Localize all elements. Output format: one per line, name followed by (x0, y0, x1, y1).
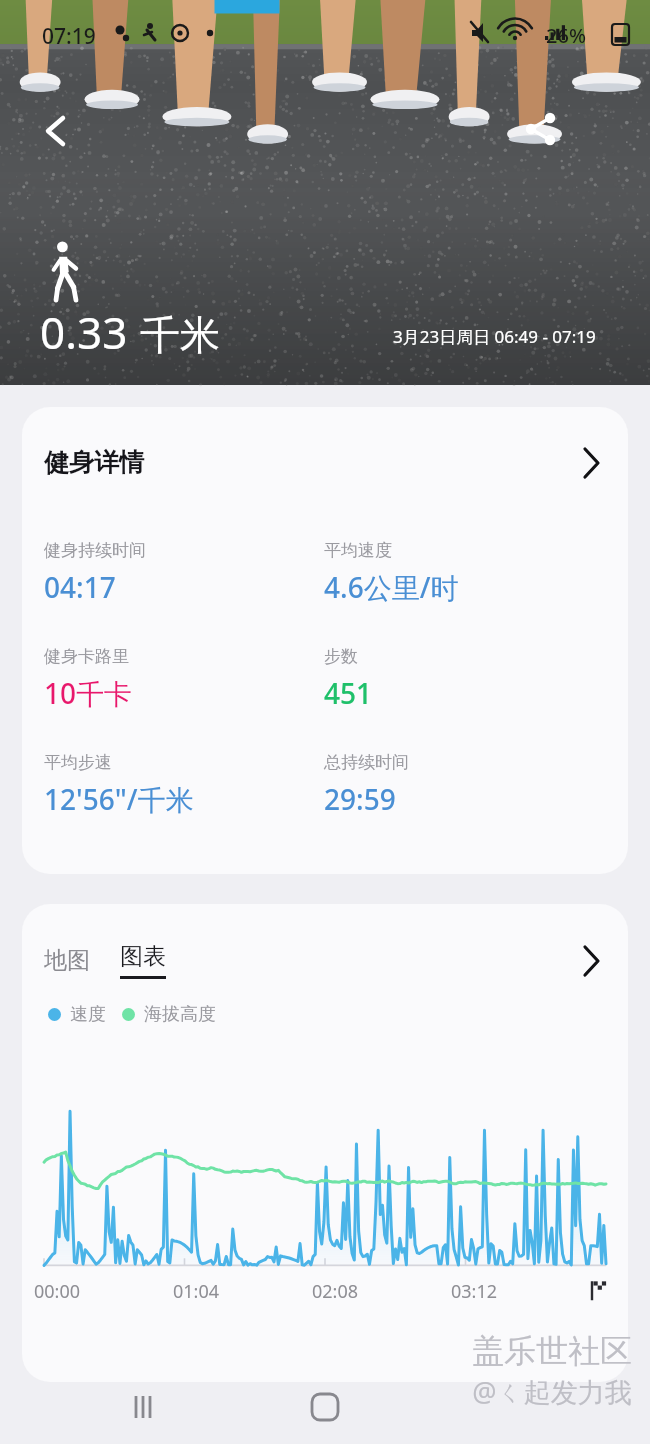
button[interactable]: 健身详情 (22, 407, 628, 874)
staticText: 04:17 (44, 568, 116, 606)
staticText: 29:59 (324, 780, 396, 818)
button[interactable]: Share (512, 100, 570, 158)
staticText: 健身详情 (44, 447, 144, 478)
staticText: 12'56"/千米 (44, 780, 194, 818)
staticText: 0.33 (40, 302, 128, 362)
button[interactable]: 地图 (44, 946, 94, 975)
button[interactable]: Home (287, 1370, 363, 1444)
staticText: 00:00 (34, 1279, 81, 1304)
staticText: 26% (546, 22, 586, 49)
staticText: 平均步速 (44, 752, 112, 773)
staticText: 千米 (140, 310, 220, 360)
staticText: 速度 (70, 1003, 106, 1026)
staticText: 03:12 (451, 1279, 498, 1304)
button[interactable]: 图表 (120, 942, 166, 979)
staticText: 海拔高度 (144, 1003, 216, 1026)
staticText: 图表 (120, 942, 166, 971)
button[interactable]: Open chart (576, 946, 606, 976)
staticText: 3月23日周日 06:49 - 07:19 (393, 325, 596, 348)
button[interactable]: Back (26, 102, 84, 160)
staticText: 健身卡路里 (44, 646, 129, 667)
staticText: 总持续时间 (324, 752, 409, 773)
staticText: 盖乐世社区 (472, 1331, 632, 1371)
button[interactable]: Recents (105, 1370, 181, 1444)
staticText: 地图 (44, 946, 90, 975)
staticText: 4.6公里/时 (324, 568, 459, 606)
staticText: 01:04 (173, 1279, 220, 1304)
button[interactable]: Back (470, 1370, 546, 1444)
staticText: 451 (324, 674, 373, 712)
staticText: 10千卡 (44, 674, 133, 712)
staticText: 07:19 (42, 22, 96, 51)
staticText: 健身持续时间 (44, 540, 146, 561)
staticText: @ㄑ起发力我 (472, 1373, 632, 1410)
staticText: 步数 (324, 646, 358, 667)
staticText: 平均速度 (324, 540, 392, 561)
staticText: 02:08 (312, 1279, 359, 1304)
